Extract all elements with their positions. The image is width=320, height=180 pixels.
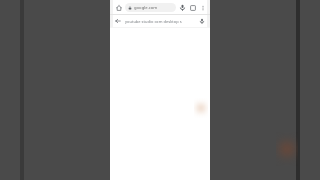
button[interactable]: Home — [114, 3, 123, 12]
button[interactable]: google.com — [125, 3, 176, 12]
button[interactable]: Voice search — [178, 3, 187, 12]
staticText: google.com — [134, 5, 158, 11]
button[interactable]: Back — [114, 17, 122, 25]
button[interactable]: Back — [110, 15, 210, 27]
staticText: youtube studio ocm desktop s — [125, 19, 196, 24]
button[interactable]: More options — [198, 3, 207, 12]
button[interactable]: Voice search — [198, 17, 206, 25]
button[interactable]: Switch tabs — [188, 3, 197, 12]
